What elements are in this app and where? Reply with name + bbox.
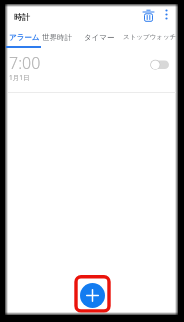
staticText: 世界時計 (42, 33, 72, 42)
button[interactable]: ストップウォッチ (123, 33, 177, 41)
button[interactable]: アラーム (6, 33, 43, 51)
button[interactable] (141, 8, 156, 23)
staticText: タイマー (84, 33, 115, 42)
staticText: 7:00 (9, 52, 41, 74)
staticText: ストップウォッチ (123, 33, 177, 41)
button[interactable] (161, 6, 172, 23)
button[interactable]: 世界時計 (42, 33, 72, 42)
button[interactable] (80, 283, 105, 308)
button[interactable]: タイマー (84, 33, 115, 42)
staticText: アラーム (9, 33, 40, 42)
staticText: 時計 (14, 12, 30, 22)
button[interactable]: 7:00 (6, 50, 177, 92)
button[interactable] (148, 58, 172, 72)
staticText: 1月1日 (9, 73, 30, 82)
